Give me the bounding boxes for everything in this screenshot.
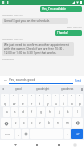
- staticText: c: [31, 121, 33, 125]
- staticText: p: [79, 102, 81, 106]
- staticText: o: [71, 102, 73, 106]
- button[interactable]: Backspace: [72, 118, 83, 128]
- button[interactable]: f: [28, 107, 36, 117]
- staticText: Mohamed 8:32 AM: [2, 14, 23, 17]
- button[interactable]: goodnight: [31, 85, 55, 93]
- staticText: Pic: [4, 79, 7, 82]
- button[interactable]: Hide keyboard: [71, 140, 78, 150]
- staticText: y: [47, 102, 49, 106]
- staticText: Thanks!: [57, 31, 68, 35]
- button[interactable]: a: [3, 107, 10, 117]
- button[interactable]: ,: [15, 129, 21, 139]
- staticText: ?123: [5, 133, 10, 136]
- staticText: Composing: [2, 58, 14, 61]
- button[interactable]: good: [6, 85, 31, 93]
- staticText: 4: [31, 94, 33, 96]
- staticText: Great! I got you on the schedule.: [4, 19, 50, 23]
- button[interactable]: d: [19, 107, 27, 117]
- staticText: Send: [75, 79, 81, 82]
- staticText: Sent 8:33 AM: [67, 26, 82, 29]
- button[interactable]: We just need to confirm another appointm…: [2, 42, 74, 56]
- staticText: t: [39, 102, 41, 106]
- button[interactable]: s: [11, 107, 18, 117]
- button[interactable]: n: [54, 118, 62, 128]
- staticText: d: [22, 110, 24, 114]
- button[interactable]: h: [46, 107, 54, 117]
- staticText: w: [13, 102, 16, 106]
- staticText: u: [55, 102, 57, 106]
- staticText: Yes, sounds good: [9, 78, 36, 82]
- button[interactable]: g: [37, 107, 45, 117]
- button[interactable]: Yes, I'm available: [40, 6, 82, 12]
- button[interactable]: v: [36, 118, 44, 128]
- button[interactable]: 8: [60, 94, 67, 106]
- staticText: j: [59, 110, 60, 114]
- button[interactable]: 4: [28, 94, 35, 106]
- staticText: g: [40, 110, 42, 114]
- button[interactable]: m: [63, 118, 71, 128]
- staticText: goodness: [61, 87, 74, 91]
- button[interactable]: Send: [74, 78, 82, 83]
- staticText: .: [67, 132, 68, 136]
- staticText: 5: [39, 94, 41, 96]
- staticText: l: [77, 110, 78, 114]
- staticText: m: [66, 121, 69, 125]
- staticText: Yes, I'm available: [42, 7, 66, 11]
- staticText: q: [4, 102, 6, 106]
- staticText: good: [15, 87, 22, 91]
- staticText: i: [63, 102, 64, 106]
- staticText: f: [31, 110, 33, 114]
- staticText: k: [67, 110, 69, 114]
- staticText: 1: [4, 94, 6, 96]
- button[interactable]: Yes, sounds good: [9, 78, 73, 84]
- button[interactable]: Emoji: [22, 129, 29, 139]
- staticText: v: [39, 121, 41, 125]
- button[interactable]: goodness: [55, 85, 79, 93]
- staticText: 7: [55, 94, 57, 96]
- staticText: 8: [63, 94, 65, 96]
- staticText: 6: [47, 94, 49, 96]
- button[interactable]: Keyboard options: [79, 85, 84, 93]
- button[interactable]: 5: [36, 94, 43, 106]
- button[interactable]: 1: [1, 94, 9, 106]
- button[interactable]: Recents: [54, 140, 64, 150]
- button[interactable]: 7: [52, 94, 59, 106]
- button[interactable]: c: [28, 118, 35, 128]
- staticText: Mohamed 8:35 AM: [2, 38, 23, 41]
- button[interactable]: l: [73, 107, 81, 117]
- button[interactable]: Thanks!: [55, 30, 82, 36]
- button[interactable]: x: [20, 118, 27, 128]
- button[interactable]: b: [45, 118, 53, 128]
- button[interactable]: Attach image: [2, 77, 8, 84]
- staticText: 9: [71, 94, 73, 96]
- button[interactable]: z: [12, 118, 19, 128]
- staticText: 0: [79, 94, 81, 96]
- staticText: b: [48, 121, 50, 125]
- staticText: n: [57, 121, 59, 125]
- button[interactable]: 0: [76, 94, 83, 106]
- button[interactable]: j: [55, 107, 63, 117]
- staticText: h: [49, 110, 51, 114]
- button[interactable]: 6: [44, 94, 51, 106]
- button[interactable]: 3: [19, 94, 27, 106]
- staticText: We just need to confirm another appointm…: [4, 43, 72, 55]
- button[interactable]: Shift: [1, 118, 11, 128]
- button[interactable]: k: [64, 107, 72, 117]
- button[interactable]: 9: [68, 94, 75, 106]
- staticText: e: [22, 102, 24, 106]
- button[interactable]: Back: [10, 140, 20, 150]
- staticText: z: [15, 121, 17, 125]
- staticText: a: [6, 110, 8, 114]
- button[interactable]: Home: [32, 140, 42, 150]
- button[interactable]: ?123: [1, 129, 14, 139]
- button[interactable]: More suggestions: [0, 85, 6, 93]
- button[interactable]: 2: [10, 94, 18, 106]
- staticText: x: [23, 121, 25, 125]
- button[interactable]: Great! I got you on the schedule.: [2, 18, 68, 24]
- staticText: ,: [18, 132, 19, 136]
- button[interactable]: Enter: [71, 129, 83, 139]
- staticText: 3: [22, 94, 24, 96]
- staticText: s: [14, 110, 16, 114]
